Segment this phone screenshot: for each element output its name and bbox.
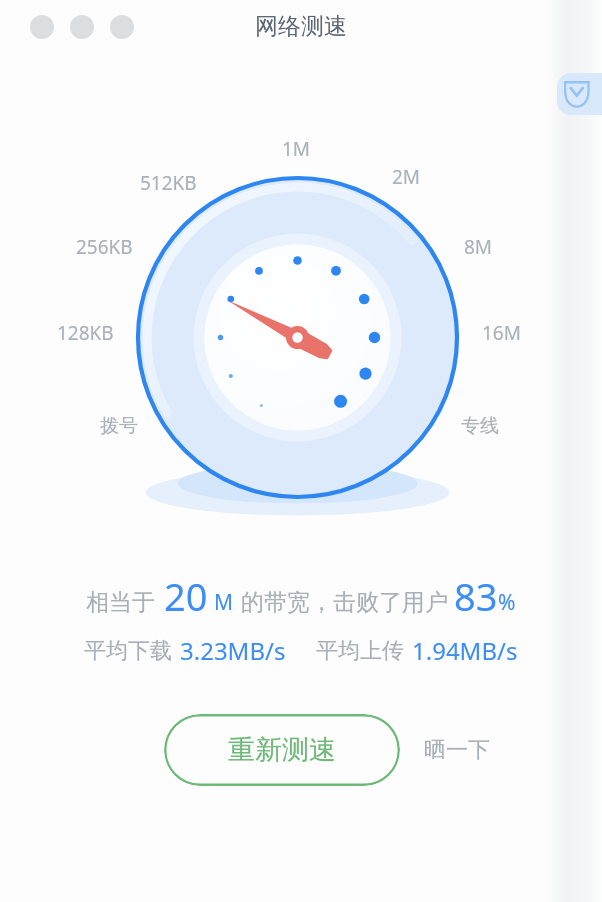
button[interactable]: Window control [30,15,54,39]
button[interactable]: 重新测速 [164,714,400,786]
staticText: 8M [464,234,493,260]
staticText: 1.94MB/s [412,634,518,667]
button[interactable]: Window control [110,15,134,39]
staticText: 晒一下 [424,736,490,764]
staticText: % [498,588,516,617]
staticText: 83 [454,570,498,622]
staticText: 20 [164,570,208,622]
staticText: 512KB [140,170,197,196]
staticText: 的带宽，击败了用户 [241,588,448,617]
staticText: 3.23MB/s [180,634,286,667]
staticText: 相当于 [86,588,155,617]
staticText: M [214,588,234,617]
staticText: 16M [482,320,521,346]
button[interactable]: Window control [70,15,94,39]
staticText: 2M [392,164,421,190]
staticText: 重新测速 [228,733,336,767]
staticText: 256KB [76,234,133,260]
staticText: 128KB [57,320,114,346]
staticText: 拨号 [100,414,138,438]
staticText: 1M [282,136,311,162]
button[interactable]: 晒一下 [416,728,498,772]
staticText: 平均上传 [316,637,404,665]
staticText: 专线 [461,414,499,438]
staticText: 平均下载 [84,637,172,665]
staticText: 网络测速 [255,12,347,41]
button[interactable]: Security shield [557,73,602,115]
